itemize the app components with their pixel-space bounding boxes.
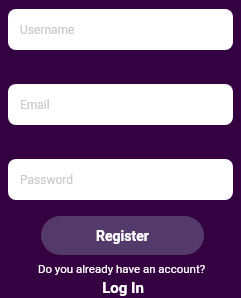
button[interactable]: Register <box>41 216 204 255</box>
button[interactable]: Email <box>8 84 233 125</box>
button[interactable]: Log In <box>102 279 144 297</box>
button[interactable]: Username <box>8 9 233 50</box>
staticText: Register <box>96 228 149 244</box>
staticText: Username <box>20 23 75 37</box>
staticText: Do you already have an account? <box>2 262 241 275</box>
button[interactable]: Password <box>8 159 233 200</box>
staticText: Password <box>20 173 74 187</box>
staticText: Email <box>20 98 50 112</box>
